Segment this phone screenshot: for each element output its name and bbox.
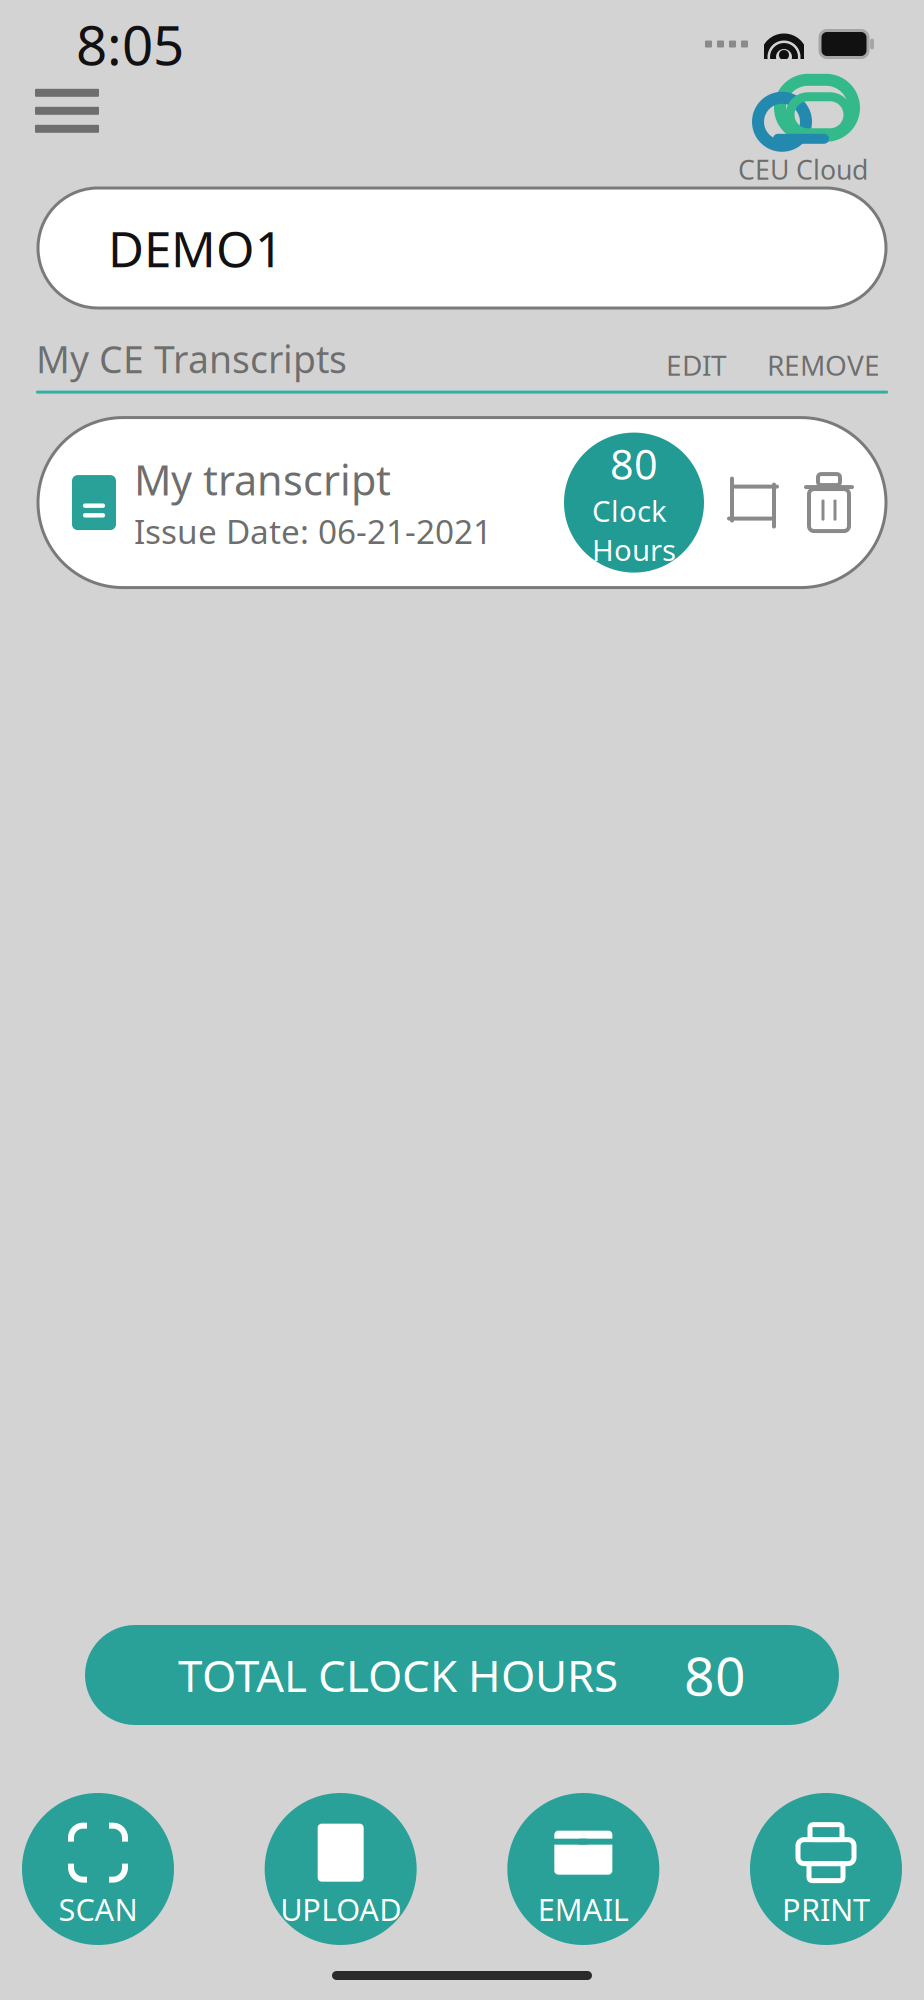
staticText: DEMO1 — [108, 215, 283, 281]
button[interactable]: UPLOAD — [265, 1793, 417, 1945]
staticText: CEU Cloud — [738, 152, 868, 187]
staticText: 80 — [684, 1640, 746, 1710]
button[interactable]: EMAIL — [507, 1793, 659, 1945]
staticText: EDIT — [666, 346, 727, 384]
staticText: 8:05 — [76, 8, 184, 80]
staticText: Issue Date: 06-21-2021 — [134, 509, 492, 553]
button[interactable]: My transcript — [38, 418, 886, 588]
staticText: My CE Transcripts — [36, 334, 347, 384]
button[interactable]: DEMO1 — [38, 188, 886, 308]
button[interactable]: SCAN — [22, 1793, 174, 1945]
staticText: 80 — [610, 436, 658, 491]
staticText: Clock Hours — [592, 491, 676, 569]
staticText: EMAIL — [538, 1889, 629, 1929]
button[interactable]: EDIT — [658, 346, 735, 384]
staticText: TOTAL CLOCK HOURS — [178, 1646, 618, 1704]
button[interactable]: TOTAL CLOCK HOURS — [85, 1625, 839, 1725]
staticText: REMOVE — [767, 346, 880, 384]
staticText: My transcript — [134, 452, 391, 507]
staticText: UPLOAD — [280, 1889, 401, 1929]
button[interactable]: Menu — [17, 71, 117, 151]
staticText: SCAN — [58, 1889, 137, 1929]
button[interactable]: REMOVE — [759, 346, 888, 384]
staticText: PRINT — [782, 1889, 870, 1929]
button[interactable]: PRINT — [750, 1793, 902, 1945]
